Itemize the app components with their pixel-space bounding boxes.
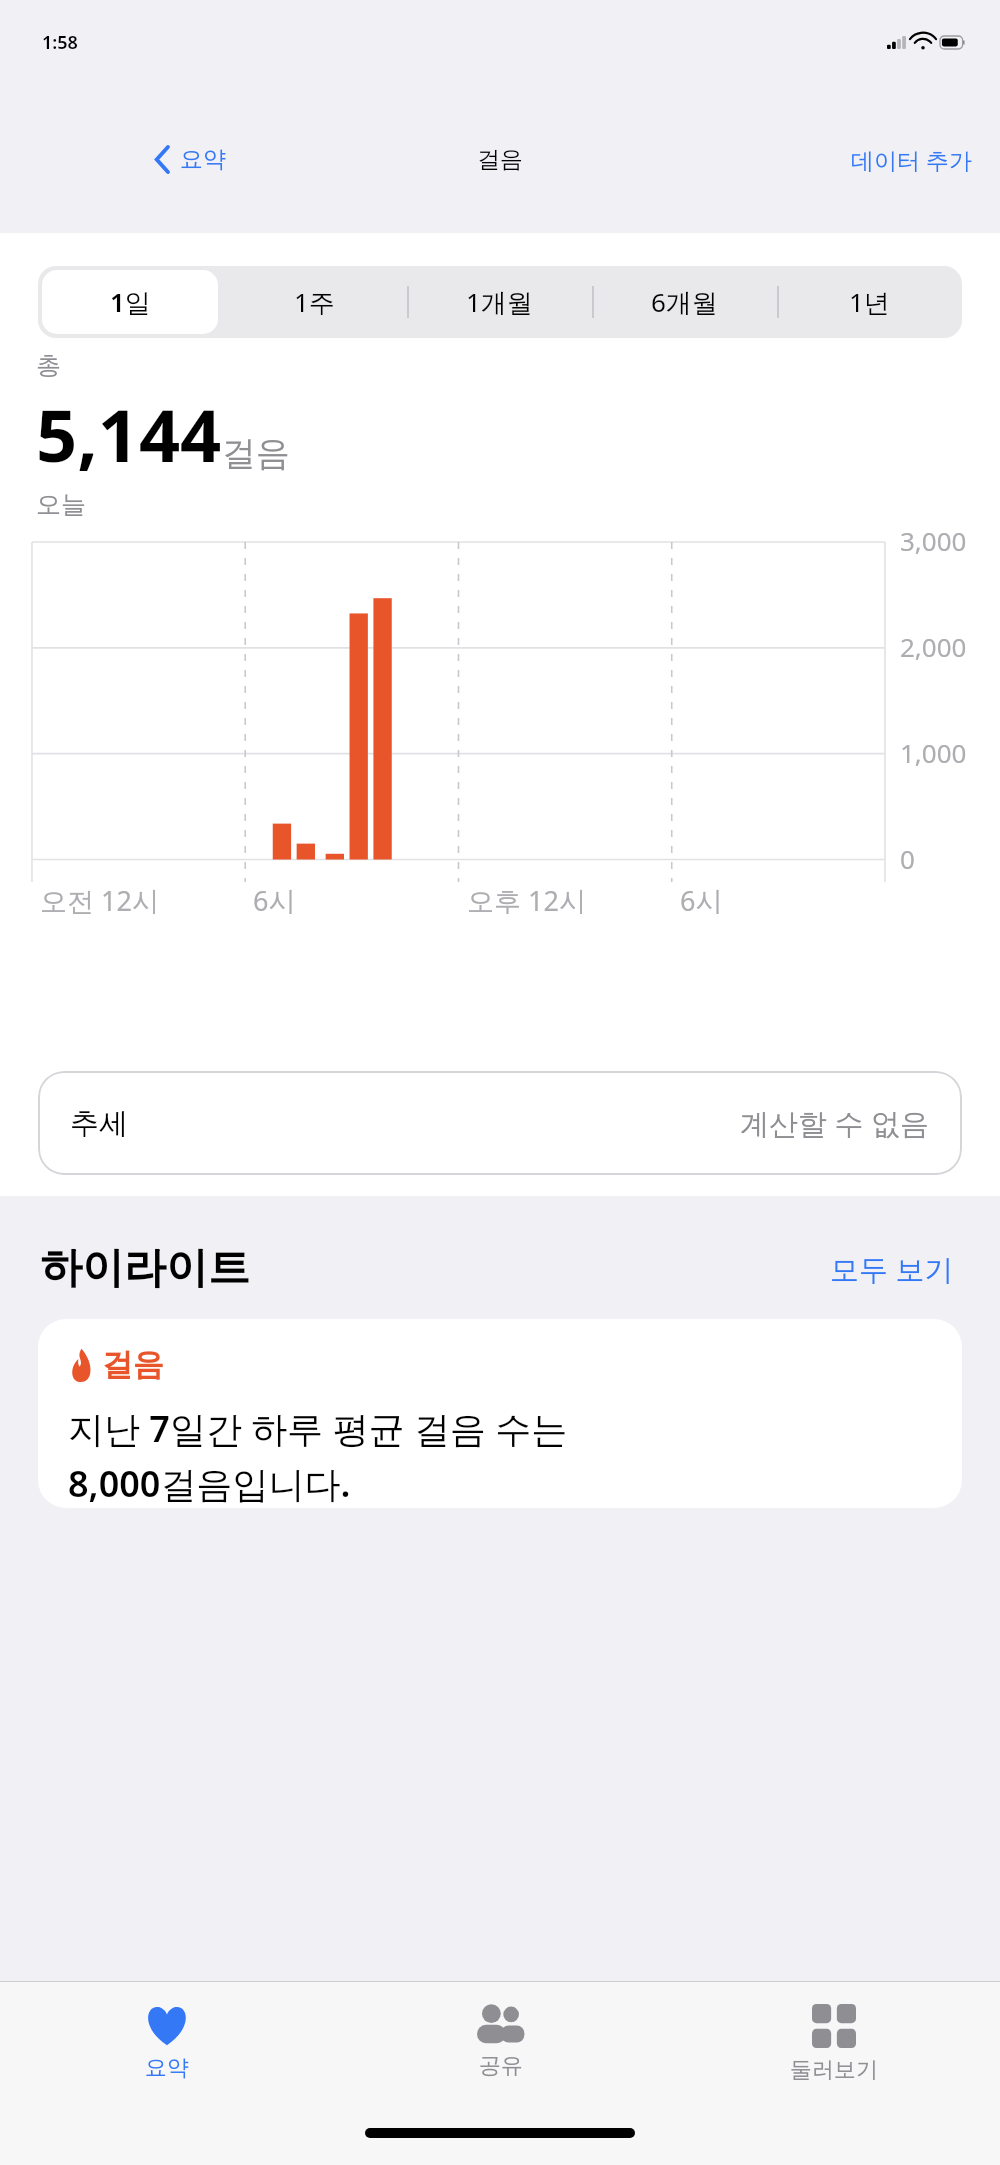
staticText: 추세 [70, 1105, 128, 1142]
button[interactable]: 모두 보기 [824, 1243, 960, 1295]
staticText: 5,144 [36, 385, 222, 483]
staticText: 0 [900, 841, 915, 876]
staticText: 1년 [849, 284, 890, 320]
other: 요약 [144, 2004, 190, 2046]
staticText: 2,000 [900, 629, 967, 664]
staticText: 요약 [180, 145, 226, 174]
button[interactable]: 1주 [226, 270, 403, 334]
other: 공유 [475, 2004, 527, 2044]
staticText: 1주 [294, 284, 335, 320]
staticText: 6개월 [651, 284, 718, 320]
staticText: 둘러보기 [790, 2056, 878, 2084]
staticText: 1개월 [466, 284, 533, 320]
staticText: 6시 [680, 882, 723, 919]
button[interactable]: 1년 [781, 270, 958, 334]
button[interactable]: 요약 [146, 139, 234, 180]
staticText: 1일 [110, 284, 151, 320]
staticText: 요약 [145, 2054, 189, 2082]
button[interactable]: 6개월 [596, 270, 773, 334]
staticText: 3,000 [900, 523, 967, 558]
button[interactable]: 추세 [38, 1071, 962, 1175]
staticText: 1,000 [900, 735, 967, 770]
staticText: 걸음 [222, 432, 290, 475]
button[interactable]: 요약 [0, 1982, 334, 2117]
button[interactable]: 1개월 [411, 270, 588, 334]
staticText: 1:58 [42, 30, 78, 55]
button[interactable]: 걸음 [38, 1319, 962, 1508]
staticText: 공유 [479, 2052, 523, 2080]
button[interactable]: 공유 [334, 1982, 667, 2117]
other: 둘러보기 [812, 2004, 856, 2048]
staticText: 계산할 수 없음 [740, 1103, 930, 1143]
staticText: 총 [36, 350, 61, 381]
staticText: 6시 [253, 882, 296, 919]
button[interactable]: 데이터 추가 [845, 138, 978, 181]
staticText: 오늘 [36, 489, 86, 520]
button[interactable]: 둘러보기 [667, 1982, 1000, 2117]
staticText: 걸음 [102, 1345, 164, 1384]
staticText: 오전 12시 [40, 882, 159, 919]
staticText: 지난 7일간 하루 평균 걸음 수는 8,000걸음입니다. [68, 1404, 568, 1508]
staticText: 오후 12시 [467, 882, 586, 919]
staticText: 하이라이트 [40, 1242, 250, 1295]
button[interactable]: 1일 [42, 270, 218, 334]
staticText: 걸음 [477, 145, 523, 174]
